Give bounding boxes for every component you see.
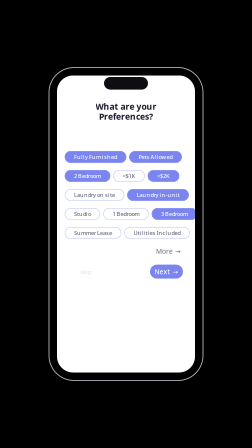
button[interactable]: Pets Allowed [129, 151, 181, 162]
staticText: Next → [154, 267, 178, 276]
button[interactable]: Utilities Included [124, 227, 189, 238]
staticText: skip [80, 267, 92, 276]
staticText: Fully Furnished [74, 153, 117, 161]
staticText: Utilities Included [133, 229, 180, 237]
staticText: Studio [74, 210, 91, 218]
button[interactable]: Laundry on site [65, 189, 124, 200]
staticText: <$1K [122, 172, 135, 180]
button[interactable]: 3 Bedroom [152, 208, 197, 219]
staticText: Summer Lease [74, 229, 112, 237]
button[interactable]: Next → [150, 265, 183, 279]
button[interactable]: Studio [65, 208, 100, 219]
button[interactable]: <$2K [148, 170, 179, 181]
staticText: 2 Bedroom [74, 172, 101, 180]
staticText: Laundry on site [74, 191, 115, 199]
button[interactable]: 2 Bedroom [65, 170, 110, 181]
button[interactable]: 1 Bedroom [103, 208, 148, 219]
button[interactable]: Fully Furnished [65, 151, 126, 162]
staticText: Preferences? [99, 111, 153, 122]
staticText: What are your [95, 101, 156, 112]
button[interactable]: Summer Lease [65, 227, 121, 238]
staticText: <$2K [157, 172, 170, 180]
staticText: 3 Bedroom [161, 210, 188, 218]
button[interactable]: More → [156, 246, 181, 256]
button[interactable]: skip [79, 265, 93, 279]
button[interactable]: Laundry in-unit [127, 189, 188, 200]
staticText: More → [156, 246, 181, 256]
staticText: Laundry in-unit [136, 191, 179, 199]
button[interactable]: <$1K [113, 170, 144, 181]
staticText: Pets Allowed [138, 153, 172, 161]
staticText: 1 Bedroom [112, 210, 139, 218]
